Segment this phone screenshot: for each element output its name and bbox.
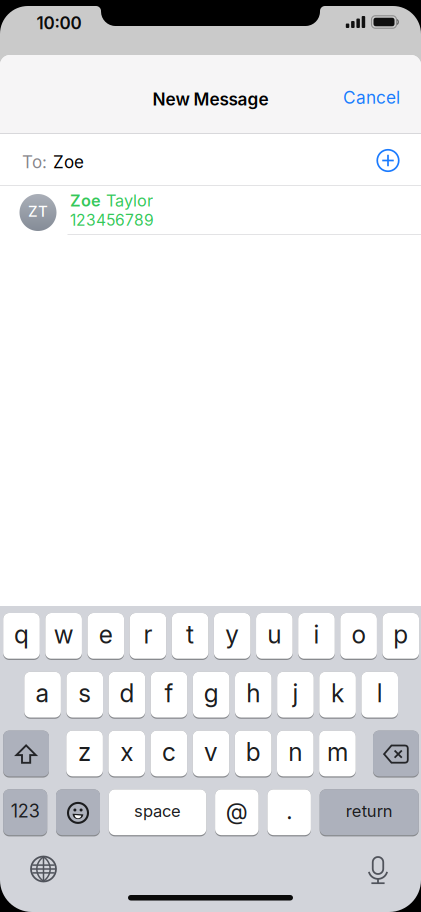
button[interactable]: w [45,613,82,660]
staticText: e [99,620,113,649]
staticText: 123456789 [70,211,154,229]
button[interactable]: h [235,672,272,719]
staticText: return [346,801,393,821]
staticText: a [36,678,50,708]
staticText: m [327,737,348,767]
staticText: q [14,620,29,649]
button[interactable]: Emoji [56,789,100,836]
button[interactable]: Add contact [373,145,403,175]
staticText: s [78,678,91,708]
button[interactable]: @ [215,789,259,836]
staticText: x [120,737,133,767]
staticText: t [186,620,194,649]
button[interactable]: To: [22,138,352,186]
staticText: y [225,620,239,649]
button[interactable]: t [172,613,208,660]
staticText: g [204,678,219,708]
button[interactable]: j [277,672,314,719]
staticText: k [331,678,344,708]
button[interactable]: y [214,613,250,660]
staticText: o [352,620,366,649]
staticText: Zoe [53,152,84,172]
staticText: u [267,620,281,649]
staticText: n [288,737,302,767]
button[interactable]: d [109,672,145,719]
staticText: i [313,620,319,649]
button[interactable]: o [340,613,377,660]
staticText: ZT [28,202,48,220]
staticText: Zoe Taylor [70,191,153,210]
button[interactable]: 123 [3,789,47,836]
staticText: p [393,620,408,649]
button[interactable]: c [151,731,187,778]
staticText: c [162,737,176,767]
staticText: . [286,797,292,825]
button[interactable]: Shift [3,731,49,778]
button[interactable]: space [109,789,206,836]
button[interactable]: ZT [0,186,421,234]
staticText: z [78,737,91,767]
button[interactable]: k [319,672,356,719]
staticText: Cancel [343,87,400,108]
staticText: To: [22,152,47,172]
button[interactable]: . [267,789,311,836]
staticText: h [246,678,260,708]
button[interactable]: a [24,672,61,719]
staticText: d [119,678,134,708]
staticText: space [134,801,181,821]
button[interactable]: Cancel [320,82,400,112]
staticText: l [377,678,383,708]
staticText: New Message [152,89,268,110]
button[interactable]: s [66,672,103,719]
button[interactable]: l [361,672,398,719]
button[interactable]: g [193,672,229,719]
staticText: 123 [11,800,40,822]
button[interactable]: e [87,613,124,660]
button[interactable]: Dictation [366,857,390,884]
button[interactable]: f [151,672,187,719]
button[interactable]: return [320,789,419,836]
staticText: v [204,737,218,767]
button[interactable]: q [3,613,40,660]
button[interactable]: b [235,731,271,778]
button[interactable]: v [193,731,229,778]
staticText: w [54,620,74,649]
button[interactable]: m [319,731,356,778]
staticText: j [292,678,298,708]
staticText: r [143,620,152,649]
button[interactable]: n [277,731,314,778]
button[interactable]: r [130,613,166,660]
button[interactable]: u [256,613,293,660]
button[interactable]: p [382,613,419,660]
button[interactable]: z [66,731,103,778]
button[interactable]: Next keyboard [31,856,56,881]
button[interactable]: i [298,613,335,660]
button[interactable]: Delete [373,731,419,778]
staticText: b [246,737,261,767]
staticText: @ [226,797,248,825]
staticText: 10:00 [36,13,81,33]
staticText: f [164,678,173,708]
button[interactable]: x [108,731,145,778]
